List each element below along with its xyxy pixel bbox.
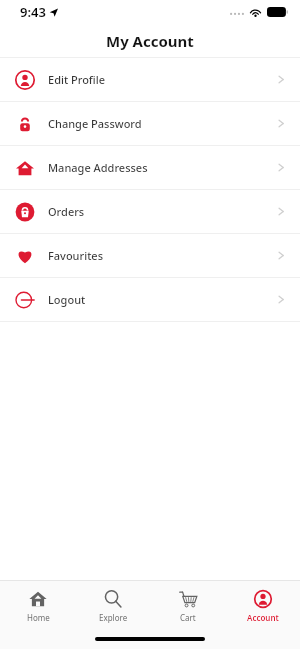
staticText: Orders (48, 204, 85, 219)
button[interactable]: Manage Addresses (0, 146, 300, 189)
button[interactable]: Account (234, 588, 292, 625)
staticText: Edit Profile (48, 72, 106, 87)
staticText: 9:43 (20, 3, 46, 21)
staticText: Logout (48, 292, 86, 307)
staticText: Explore (99, 612, 128, 623)
staticText: Account (247, 612, 279, 623)
staticText: Cart (180, 612, 196, 623)
button[interactable]: Explore (84, 588, 142, 625)
button[interactable]: Cart (159, 588, 217, 625)
button[interactable]: Change Password (0, 102, 300, 145)
staticText: My Account (106, 31, 194, 51)
staticText: Home (27, 612, 50, 623)
button[interactable]: Home (9, 588, 67, 625)
button[interactable]: Edit Profile (0, 58, 300, 101)
button[interactable]: Logout (0, 278, 300, 321)
button[interactable]: Orders (0, 190, 300, 233)
button[interactable]: Favourites (0, 234, 300, 277)
staticText: Manage Addresses (48, 160, 148, 175)
staticText: Favourites (48, 248, 104, 263)
staticText: Change Password (48, 116, 142, 131)
